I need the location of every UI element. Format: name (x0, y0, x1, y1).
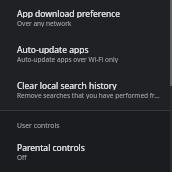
button[interactable]: Parental controls (0, 134, 172, 171)
button[interactable]: Clear local search history (0, 73, 172, 109)
button[interactable]: Auto-update apps (0, 37, 172, 73)
staticText: Parental controls (17, 142, 85, 152)
staticText: User controls (17, 121, 60, 130)
staticText: Auto-update apps (17, 44, 89, 54)
staticText: Remove searches that you have performed … (17, 91, 162, 99)
staticText: Off (17, 153, 27, 161)
staticText: Over any network (17, 19, 72, 27)
staticText: Clear local search history (17, 80, 117, 90)
staticText: Auto-update apps over Wi-Fi only (17, 55, 118, 63)
button[interactable]: App download preference (0, 4, 172, 37)
staticText: App download preference (17, 8, 121, 18)
